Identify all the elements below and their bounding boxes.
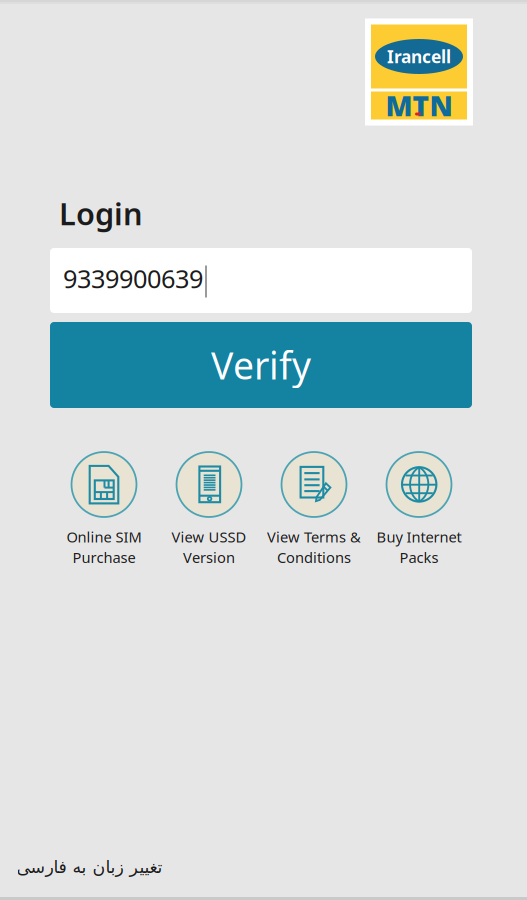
button[interactable]: Verify: [50, 322, 472, 408]
staticText: MTN: [385, 87, 452, 124]
staticText: Packs: [399, 547, 438, 567]
staticText: View USSD: [171, 527, 246, 546]
staticText: View Terms &: [267, 527, 361, 546]
button[interactable]: 9339900639: [50, 248, 472, 313]
staticText: 9339900639: [63, 262, 203, 295]
button[interactable]: تغییر زبان به فارسی: [0, 845, 527, 889]
staticText: Online SIM: [66, 527, 141, 546]
button[interactable]: Buy Internet Packs: [366, 452, 471, 567]
staticText: Verify: [211, 340, 311, 390]
staticText: Buy Internet: [376, 527, 461, 546]
button[interactable]: Online SIM Purchase: [51, 452, 156, 567]
staticText: Version: [183, 547, 235, 567]
button[interactable]: View Terms and Conditions: [261, 452, 366, 567]
staticText: تغییر زبان به فارسی: [16, 857, 162, 877]
staticText: Irancell: [387, 45, 451, 68]
button[interactable]: View USSD Version: [156, 452, 261, 567]
staticText: Conditions: [277, 547, 351, 567]
staticText: Login: [59, 193, 143, 234]
staticText: Purchase: [72, 547, 135, 567]
